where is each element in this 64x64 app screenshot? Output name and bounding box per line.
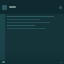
button[interactable]	[7, 16, 62, 17]
button[interactable]: Menu	[2, 5, 7, 10]
button[interactable]	[7, 25, 62, 26]
button[interactable]	[7, 28, 62, 29]
button[interactable]	[7, 22, 62, 23]
button[interactable]: More options	[59, 6, 62, 9]
button[interactable]	[7, 19, 62, 20]
button[interactable]: Action	[2, 61, 5, 63]
